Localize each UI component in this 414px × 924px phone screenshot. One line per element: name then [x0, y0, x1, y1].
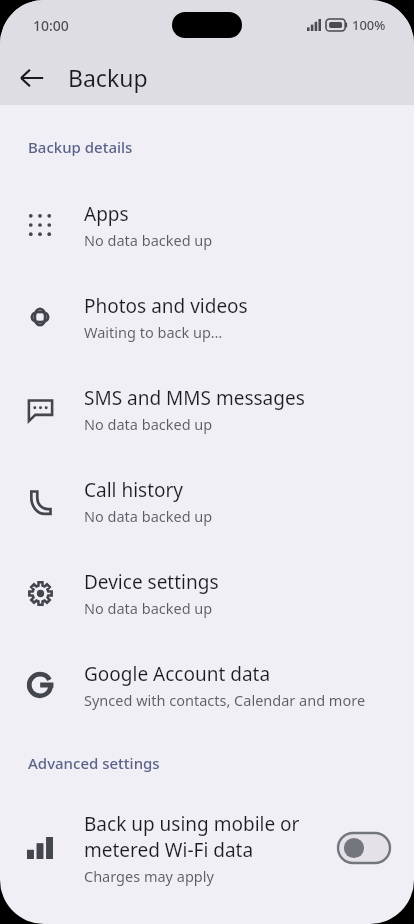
button[interactable]: Photos and videos	[0, 271, 414, 363]
staticText: No data backed up	[84, 414, 398, 434]
button[interactable]: Call history	[0, 455, 414, 547]
button[interactable]: SMS and MMS messages	[0, 363, 414, 455]
staticText: Waiting to back up…	[84, 322, 398, 342]
button[interactable]: Back	[8, 54, 56, 102]
staticText: 10:00	[33, 16, 69, 35]
staticText: Google Account data	[84, 661, 271, 687]
staticText: No data backed up	[84, 598, 398, 618]
staticText: Back up using mobile or metered Wi-Fi da…	[84, 811, 312, 863]
button[interactable]: Back up using mobile data toggle	[336, 829, 392, 867]
button[interactable]: Device settings	[0, 547, 414, 639]
staticText: Backup details	[28, 137, 133, 157]
staticText: Synced with contacts, Calendar and more	[84, 690, 366, 710]
staticText: Charges may apply	[84, 866, 214, 886]
button[interactable]: Back up using mobile or metered Wi-Fi da…	[0, 793, 414, 903]
staticText: Advanced settings	[28, 753, 160, 773]
staticText: Apps	[84, 201, 129, 227]
staticText: SMS and MMS messages	[84, 385, 305, 411]
staticText: No data backed up	[84, 506, 398, 526]
staticText: Backup	[68, 62, 148, 93]
staticText: Call history	[84, 477, 184, 503]
button[interactable]: Google Account data	[0, 639, 414, 731]
staticText: 100%	[352, 16, 386, 34]
staticText: Device settings	[84, 569, 219, 595]
staticText: No data backed up	[84, 230, 398, 250]
staticText: Photos and videos	[84, 293, 248, 319]
button[interactable]: Apps	[0, 179, 414, 271]
